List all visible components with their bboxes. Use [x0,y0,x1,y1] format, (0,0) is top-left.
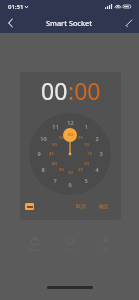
staticText: 5 [84,177,88,185]
staticText: 12 [67,119,74,127]
staticText: 45 [49,151,54,157]
staticText: 1 [84,123,88,131]
staticText: 3 [99,150,103,158]
staticText: 11 [52,123,59,131]
staticText: 10 [40,135,47,143]
staticText: 05 [78,135,83,141]
staticText: 00 [41,75,68,106]
staticText: 20 [84,161,89,167]
staticText: 确定 [99,203,109,209]
staticText: 50 [52,142,57,148]
staticText: 25 [78,167,83,173]
staticText: 40 [52,161,57,167]
staticText: 8 [41,166,45,174]
button[interactable]: Repeat [25,203,34,210]
staticText: 55 [59,135,64,141]
staticText: 4 [95,166,99,174]
staticText: 15 [87,151,92,157]
staticText: 35 [59,167,64,173]
staticText: 9 [37,150,41,158]
button[interactable]: Back [0,13,20,33]
staticText: 00 [68,132,73,138]
staticText: 2 [95,135,99,143]
button[interactable]: 取消 [75,201,87,211]
staticText: 取消 [76,203,86,209]
button[interactable]: 确定 [98,201,110,211]
staticText: 7 [53,177,57,185]
staticText: Smart Socket [46,18,92,28]
staticText: 01:51 [8,3,24,11]
staticText: 30 [68,170,73,176]
staticText: 10 [84,142,89,148]
staticText: Device [28,246,42,252]
staticText: :00 [68,75,101,106]
staticText: 6 [68,181,72,189]
button[interactable]: Device [17,237,52,255]
button[interactable]: Edit [119,13,139,33]
staticText: 00 [68,132,73,138]
